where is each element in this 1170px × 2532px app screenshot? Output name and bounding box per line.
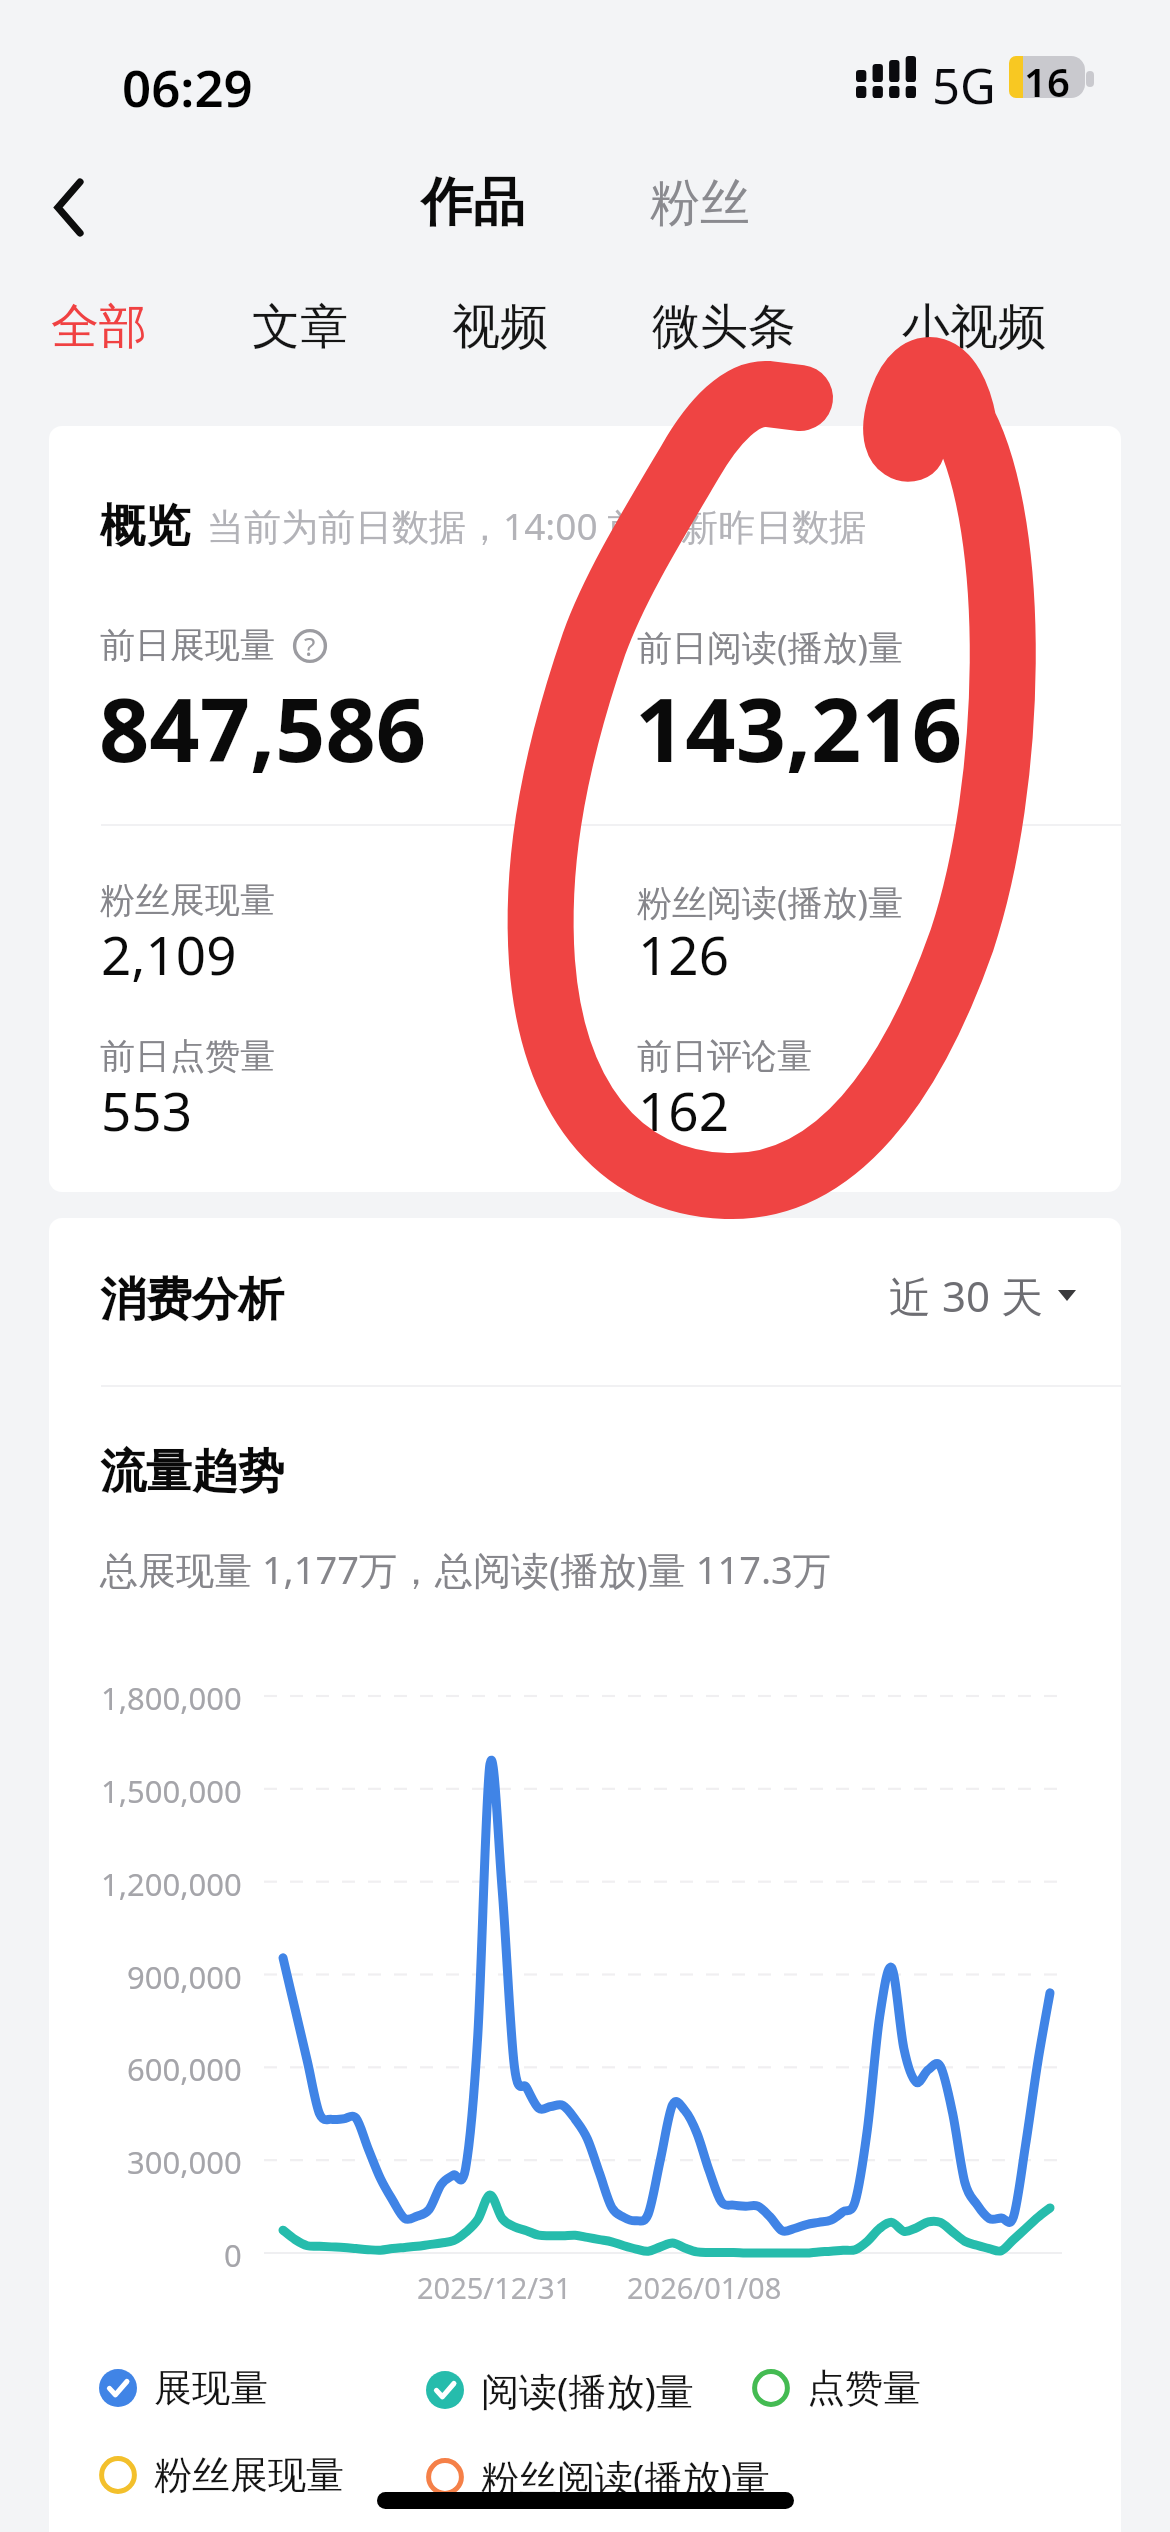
staticText: 当前为前日数据，14:00 前更新昨日数据 — [207, 500, 867, 551]
button[interactable]: 粉丝阅读(播放)量 — [426, 2446, 770, 2508]
button[interactable]: 全部 — [33, 283, 165, 371]
staticText: 粉丝 — [650, 172, 750, 235]
staticText: 847,586 — [99, 668, 427, 788]
staticText: 1,800,000 — [101, 1677, 242, 1719]
button[interactable]: 小视频 — [884, 283, 1064, 371]
staticText: 0 — [224, 2234, 242, 2276]
staticText: 视频 — [452, 297, 548, 357]
button[interactable]: 作品 — [401, 158, 545, 248]
staticText: 文章 — [252, 297, 348, 357]
staticText: 600,000 — [127, 2048, 242, 2090]
staticText: 300,000 — [127, 2141, 242, 2183]
staticText: 143,216 — [635, 668, 963, 788]
staticText: 粉丝展现量 — [154, 2451, 344, 2499]
button[interactable]: Back — [14, 148, 126, 268]
staticText: 126 — [638, 918, 729, 990]
staticText: 粉丝阅读(播放)量 — [637, 878, 904, 926]
staticText: 消费分析 — [100, 1271, 284, 1329]
staticText: 小视频 — [902, 297, 1046, 357]
staticText: 162 — [638, 1074, 729, 1146]
staticText: 553 — [101, 1074, 192, 1146]
staticText: 流量趋势 — [100, 1443, 284, 1501]
staticText: 900,000 — [127, 1956, 242, 1998]
staticText: 16 — [1024, 54, 1070, 108]
button[interactable]: 粉丝展现量 — [99, 2446, 344, 2504]
button[interactable]: 近 30 天 — [879, 1257, 1086, 1334]
staticText: 前日阅读(播放)量 — [637, 623, 904, 671]
staticText: 点赞量 — [807, 2364, 921, 2412]
staticText: 2026/01/08 — [627, 2268, 782, 2307]
staticText: 作品 — [421, 170, 525, 236]
staticText: 前日评论量 — [637, 1034, 812, 1078]
button[interactable]: 展现量 — [99, 2359, 268, 2417]
staticText: 粉丝展现量 — [100, 878, 275, 922]
staticText: 全部 — [51, 297, 147, 357]
staticText: 2025/12/31 — [417, 2268, 572, 2307]
staticText: 粉丝阅读(播放)量 — [481, 2451, 770, 2503]
button[interactable]: 文章 — [234, 283, 366, 371]
staticText: 2,109 — [101, 918, 237, 990]
staticText: 总展现量 1,177万，总阅读(播放)量 117.3万 — [100, 1543, 831, 1595]
staticText: 近 30 天 — [889, 1267, 1043, 1324]
staticText: 5G — [932, 52, 996, 119]
staticText: 1,200,000 — [101, 1863, 242, 1905]
button[interactable]: 微头条 — [634, 283, 814, 371]
button[interactable]: 视频 — [434, 283, 566, 371]
staticText: 前日展现量 — [100, 623, 275, 667]
button[interactable]: 阅读(播放)量 — [426, 2359, 694, 2421]
staticText: 前日点赞量 — [100, 1034, 275, 1078]
button[interactable]: 点赞量 — [752, 2359, 921, 2417]
staticText: 概览 — [100, 498, 190, 555]
staticText: 微头条 — [652, 297, 796, 357]
button[interactable]: 粉丝 — [630, 160, 770, 247]
staticText: ? — [304, 628, 316, 663]
staticText: 阅读(播放)量 — [481, 2364, 694, 2416]
staticText: 展现量 — [154, 2364, 268, 2412]
staticText: 1,500,000 — [101, 1770, 242, 1812]
staticText: 06:29 — [122, 52, 253, 121]
